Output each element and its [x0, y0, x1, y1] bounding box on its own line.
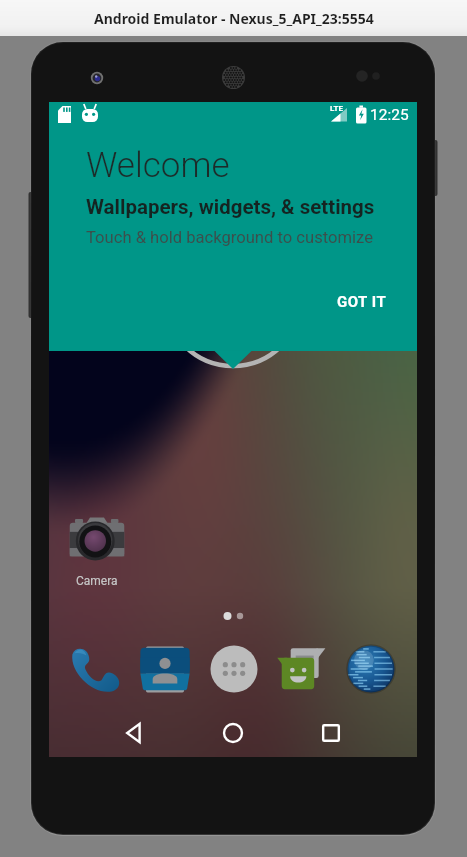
- button[interactable]: Browser: [337, 635, 405, 703]
- staticText: Camera: [76, 574, 118, 588]
- staticText: Wallpapers, widgets, & settings: [86, 195, 375, 219]
- staticText: Touch & hold background to customize: [86, 228, 373, 247]
- button[interactable]: GOT IT: [327, 284, 397, 320]
- button[interactable]: Recents: [308, 710, 354, 756]
- staticText: Android Emulator - Nexus_5_API_23:5554: [94, 9, 374, 28]
- staticText: GOT IT: [337, 293, 387, 311]
- staticText: LTE: [330, 104, 343, 113]
- staticText: 12:25: [370, 106, 409, 124]
- button[interactable]: Camera: [67, 516, 127, 588]
- button[interactable]: Contacts: [131, 635, 199, 703]
- button[interactable]: Home: [210, 710, 256, 756]
- button[interactable]: Messaging: [269, 635, 337, 703]
- button[interactable]: Phone: [63, 635, 131, 703]
- button[interactable]: Apps: [200, 635, 268, 703]
- button[interactable]: Back: [112, 710, 158, 756]
- staticText: Welcome: [86, 145, 230, 186]
